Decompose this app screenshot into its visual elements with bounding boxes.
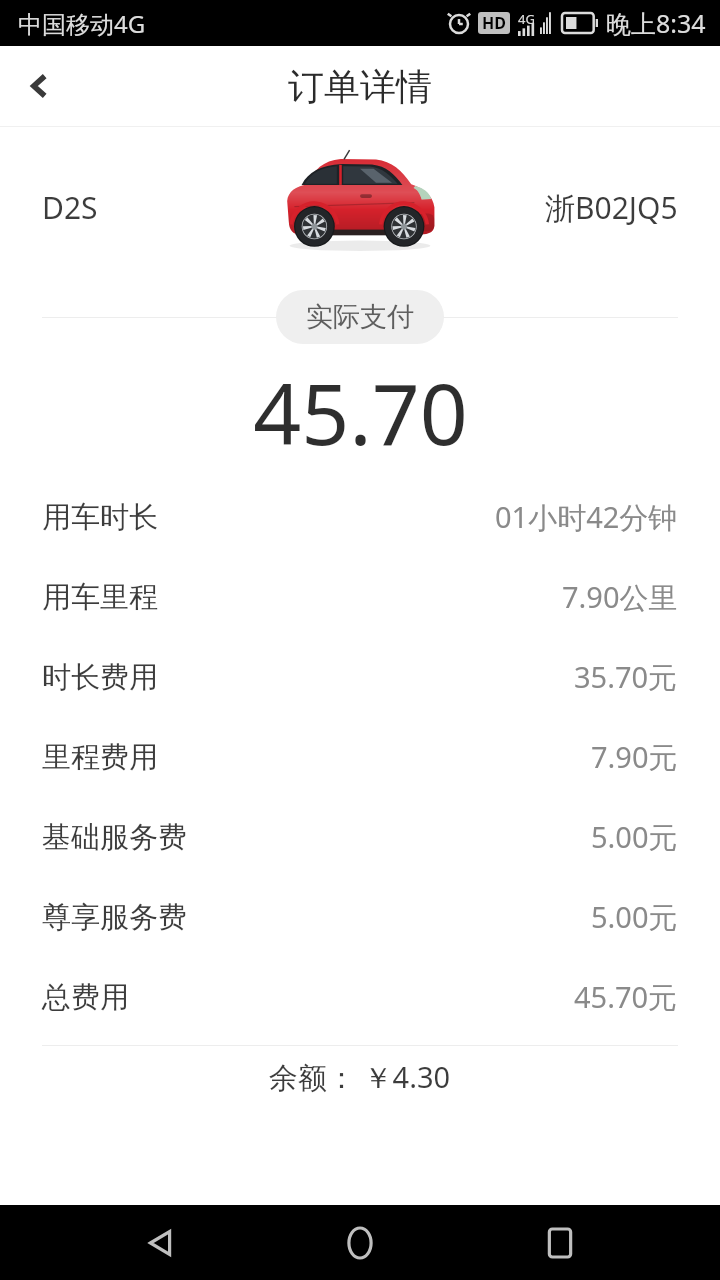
button[interactable]: Back xyxy=(0,46,80,126)
button[interactable]: Home xyxy=(320,1205,400,1280)
staticText: 订单详情 xyxy=(288,64,432,109)
button[interactable]: Back xyxy=(120,1205,200,1280)
staticText: 晚上8:34 xyxy=(606,6,706,40)
staticText: 35.70元 xyxy=(574,657,678,697)
staticText: D2S xyxy=(42,187,98,228)
button[interactable]: 用车里程 xyxy=(0,557,720,637)
staticText: 用车时长 xyxy=(42,499,158,536)
staticText: 基础服务费 xyxy=(42,819,187,856)
staticText: 45.70元 xyxy=(574,977,678,1017)
staticText: 实际支付 xyxy=(306,300,414,334)
button[interactable]: 总费用 xyxy=(0,957,720,1037)
staticText: 01小时42分钟 xyxy=(495,497,678,537)
staticText: 中国移动4G xyxy=(18,7,146,40)
staticText: 尊享服务费 xyxy=(42,899,187,936)
button[interactable]: 时长费用 xyxy=(0,637,720,717)
button[interactable]: 尊享服务费 xyxy=(0,877,720,957)
staticText: 用车里程 xyxy=(42,579,158,616)
staticText: 7.90元 xyxy=(591,737,678,777)
button[interactable]: Recent apps xyxy=(520,1205,600,1280)
staticText: 总费用 xyxy=(42,979,129,1016)
button[interactable]: 基础服务费 xyxy=(0,797,720,877)
staticText: 时长费用 xyxy=(42,659,158,696)
staticText: 5.00元 xyxy=(591,897,678,937)
staticText: 里程费用 xyxy=(42,739,158,776)
staticText: HD xyxy=(482,12,506,34)
staticText: 4G xyxy=(518,10,535,28)
staticText: 余额： ￥4.30 xyxy=(269,1057,451,1097)
staticText: 45.70 xyxy=(253,355,468,469)
staticText: 浙B02JQ5 xyxy=(545,187,678,228)
staticText: 5.00元 xyxy=(591,817,678,857)
staticText: 7.90公里 xyxy=(562,577,678,617)
button[interactable]: 里程费用 xyxy=(0,717,720,797)
button[interactable]: 用车时长 xyxy=(0,477,720,557)
